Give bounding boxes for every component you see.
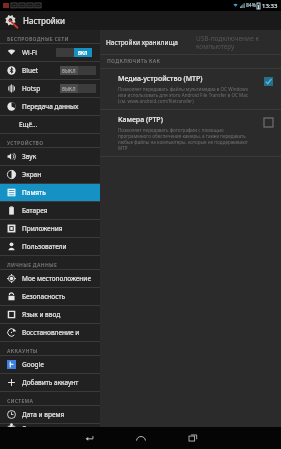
staticText: Bluetooth [22,66,41,75]
staticText: Hotspot [22,84,41,93]
button[interactable]: Восстановление и сброс [0,324,100,341]
staticText: Камера (PTP) [118,115,163,125]
staticText: Пользователи [22,242,67,251]
staticText: Передача данных [22,102,79,111]
staticText: 13:33 [262,2,278,10]
staticText: ВКЛ [78,50,88,56]
staticText: ЛИЧНЫЕ ДАННЫЕ [7,262,58,269]
staticText: Wi-Fi [22,48,37,57]
staticText: Спец. возможности [22,424,84,427]
staticText: УСТРОЙСТВО [7,140,44,147]
staticText: Дата и время [22,410,65,419]
staticText: Язык и ввод [22,310,61,319]
staticText: СИСТЕМА [7,398,34,405]
button[interactable]: Back [74,427,104,449]
button[interactable]: Google [0,356,100,373]
button[interactable]: Память [0,184,100,201]
button[interactable]: Ещё... [0,116,100,133]
staticText: Безопасность [22,292,65,301]
button[interactable]: Bluetooth [0,62,100,79]
staticText: Экран [22,170,42,179]
staticText: Звук [22,152,37,161]
staticText: АККАУНТЫ [7,348,38,355]
button[interactable]: Спец. возможности [0,424,100,427]
staticText: БЕСПРОВОДНЫЕ СЕТИ [7,36,69,43]
staticText: Добавить аккаунт [22,378,79,387]
button[interactable]: Recent apps [178,427,208,449]
button[interactable]: Медиа-устройство (MTP) [100,69,281,109]
button[interactable]: Мое местоположение [0,270,100,287]
staticText: ВЫКЛ [62,86,76,92]
staticText: Позволяет передавать фотографии с помощь… [118,127,256,151]
staticText: Память [22,188,46,197]
button[interactable]: Home [126,427,156,449]
button[interactable]: Батарея [0,202,100,219]
staticText: ВЫКЛ [62,68,76,74]
staticText: Позволяет передавать файлы мультимедиа в… [118,86,256,104]
button[interactable]: Дата и время [0,406,100,423]
staticText: Настройки хранилища [106,38,178,47]
button[interactable]: Настройки хранилища [100,30,190,54]
staticText: ПОДКЛЮЧИТЬ КАК [107,58,161,65]
button[interactable]: Звук [0,148,100,165]
staticText: USB-подключение к компьютеру [196,34,277,51]
staticText: Батарея [22,206,48,215]
staticText: 84% [246,2,256,9]
staticText: Приложения [22,224,63,233]
button[interactable]: Hotspot [0,80,100,97]
button[interactable]: Передача данных [0,98,100,115]
staticText: Мое местоположение [22,274,91,283]
staticText: Восстановление и сброс [22,328,96,337]
button[interactable]: Безопасность [0,288,100,305]
staticText: Настройки [23,15,65,26]
button[interactable]: Добавить аккаунт [0,374,100,391]
button[interactable]: Wi-Fi [0,44,100,61]
staticText: Медиа-устройство (MTP) [118,74,203,84]
button[interactable]: USB-подключение к компьютеру [190,30,281,54]
button[interactable]: Экран [0,166,100,183]
staticText: Google [22,360,44,369]
button[interactable]: Приложения [0,220,100,237]
button[interactable]: Язык и ввод [0,306,100,323]
button[interactable]: Пользователи [0,238,100,255]
button[interactable]: Камера (PTP) [100,110,281,156]
staticText: Ещё... [19,120,38,129]
